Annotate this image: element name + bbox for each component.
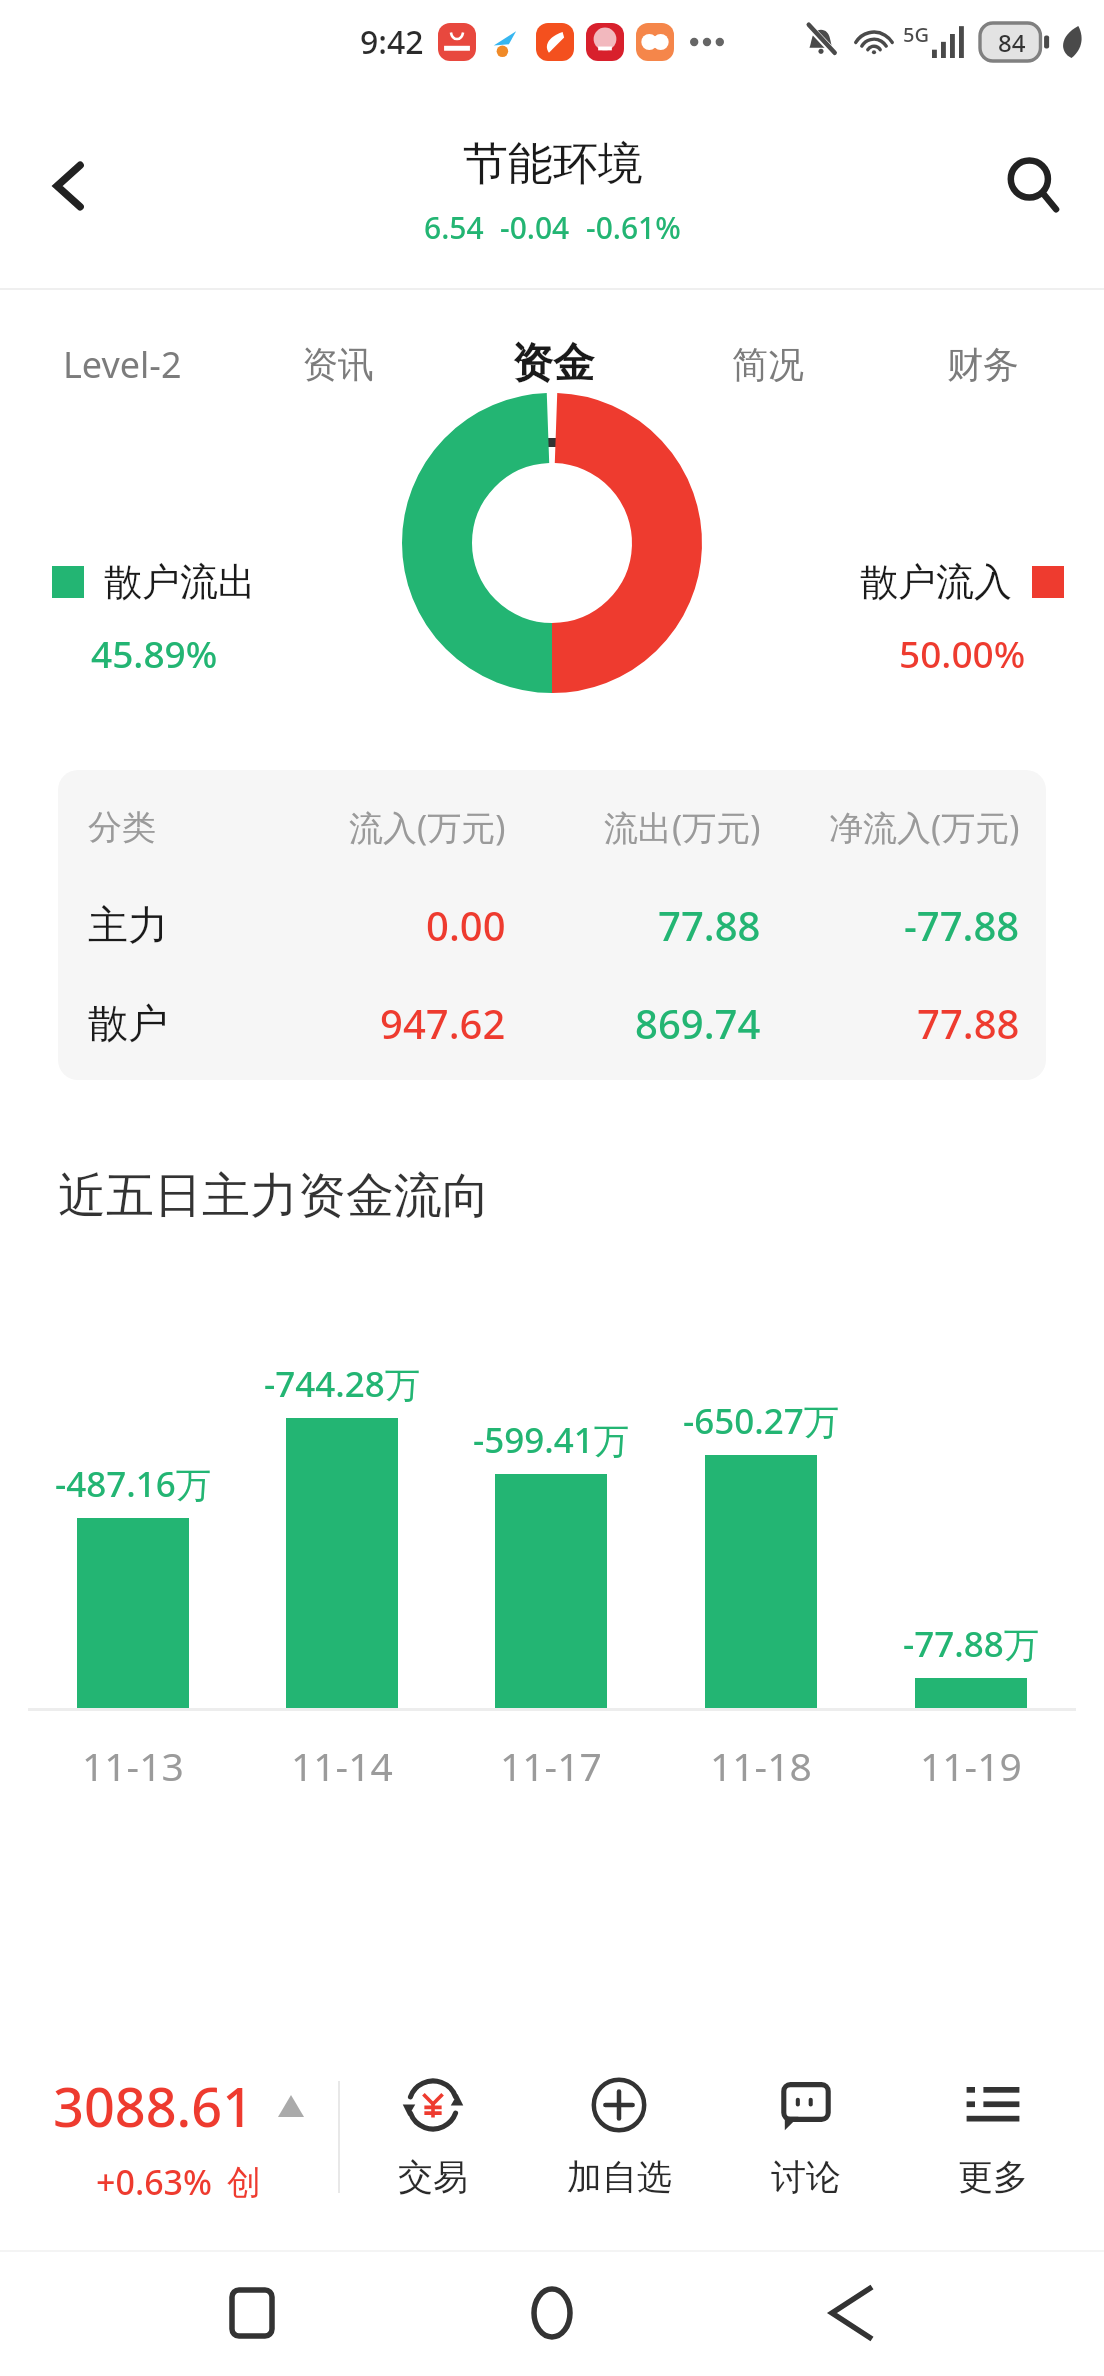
staticText: 简况 bbox=[732, 342, 804, 387]
staticText: 77.88 bbox=[917, 996, 1020, 1050]
staticText: 净流入(万元) bbox=[829, 804, 1020, 850]
button[interactable]: 简况 bbox=[660, 290, 875, 438]
staticText: 6.54 bbox=[424, 207, 484, 248]
staticText: 讨论 bbox=[771, 2155, 841, 2199]
staticText: 5G bbox=[903, 21, 929, 48]
staticText: 财务 bbox=[947, 342, 1019, 387]
staticText: 50.00% bbox=[899, 628, 1026, 678]
button[interactable]: 3088.61 bbox=[18, 2024, 338, 2250]
staticText: 交易 bbox=[398, 2155, 468, 2199]
staticText: 45.89% bbox=[91, 628, 218, 678]
staticText: 0.00 bbox=[426, 898, 506, 952]
staticText: -0.61% bbox=[586, 207, 681, 248]
staticText: 11-17 bbox=[500, 1739, 602, 1792]
staticText: -77.88万 bbox=[903, 1620, 1039, 1668]
button[interactable]: Recents bbox=[204, 2265, 300, 2361]
staticText: -77.88 bbox=[904, 898, 1020, 952]
staticText: 11-18 bbox=[710, 1739, 812, 1792]
staticText: 分类 bbox=[88, 806, 156, 849]
staticText: 节能环境 bbox=[463, 136, 643, 193]
staticText: 84 bbox=[998, 26, 1026, 59]
staticText: 散户 bbox=[88, 998, 168, 1048]
button[interactable]: 财务 bbox=[875, 290, 1090, 438]
staticText: 9:42 bbox=[360, 20, 424, 64]
button[interactable]: Back bbox=[18, 134, 122, 238]
staticText: 加自选 bbox=[567, 2155, 672, 2199]
staticText: -487.16万 bbox=[55, 1460, 211, 1508]
staticText: 资讯 bbox=[302, 342, 374, 387]
staticText: 流入(万元) bbox=[349, 804, 506, 850]
staticText: -744.28万 bbox=[264, 1360, 420, 1408]
button[interactable]: Back bbox=[804, 2265, 900, 2361]
staticText: -650.27万 bbox=[683, 1397, 839, 1445]
button[interactable]: Search bbox=[982, 134, 1086, 238]
staticText: +0.63% bbox=[96, 2159, 213, 2205]
button[interactable]: 交易 bbox=[340, 2024, 526, 2250]
button[interactable]: Level-2 bbox=[14, 290, 230, 438]
button[interactable]: 资金 bbox=[445, 290, 660, 438]
staticText: 11-13 bbox=[82, 1739, 184, 1792]
staticText: 11-14 bbox=[291, 1739, 393, 1792]
staticText: 散户流入 bbox=[860, 558, 1012, 606]
staticText: 创 bbox=[227, 2161, 261, 2204]
button[interactable]: 讨论 bbox=[712, 2024, 899, 2250]
staticText: 11-19 bbox=[920, 1739, 1022, 1792]
staticText: 947.62 bbox=[380, 996, 506, 1050]
staticText: 流出(万元) bbox=[604, 804, 761, 850]
staticText: 主力 bbox=[88, 900, 168, 950]
staticText: 869.74 bbox=[635, 996, 761, 1050]
staticText: -0.04 bbox=[500, 207, 570, 248]
button[interactable]: 更多 bbox=[899, 2024, 1086, 2250]
button[interactable]: 加自选 bbox=[526, 2024, 712, 2250]
staticText: 3088.61 bbox=[53, 2069, 254, 2143]
staticText: -599.41万 bbox=[473, 1416, 629, 1464]
button[interactable]: Home bbox=[504, 2265, 600, 2361]
button[interactable]: 资讯 bbox=[230, 290, 445, 438]
staticText: Level-2 bbox=[63, 340, 182, 389]
staticText: 77.88 bbox=[658, 898, 761, 952]
staticText: 近五日主力资金流向 bbox=[58, 1166, 490, 1226]
staticText: 散户流出 bbox=[104, 558, 256, 606]
staticText: 资金 bbox=[512, 338, 594, 390]
staticText: 更多 bbox=[958, 2155, 1028, 2199]
